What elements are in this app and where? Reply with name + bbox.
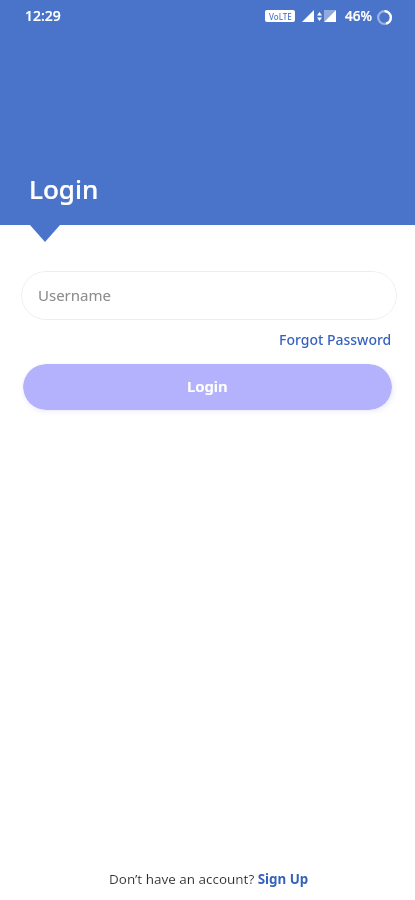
- other: Battery 46 percent: [377, 10, 392, 25]
- staticText: Login: [29, 171, 99, 206]
- staticText: Don’t have an account? Sign Up: [109, 870, 309, 888]
- staticText: Username: [38, 285, 111, 305]
- button[interactable]: Forgot Password: [279, 330, 392, 349]
- button[interactable]: Don’t have an account? Sign Up: [103, 868, 315, 890]
- button[interactable]: Login: [23, 364, 392, 410]
- button[interactable]: Username: [21, 271, 397, 320]
- other: Mobile signal: [302, 10, 314, 22]
- staticText: VoLTE: [269, 11, 292, 22]
- staticText: 46%: [345, 7, 372, 25]
- staticText: Login: [187, 376, 228, 396]
- staticText: 12:29: [25, 6, 61, 25]
- staticText: Forgot Password: [279, 330, 392, 349]
